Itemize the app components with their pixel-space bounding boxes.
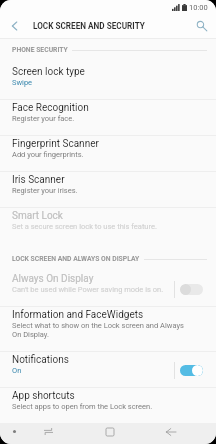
staticText: Swipe xyxy=(12,78,216,87)
button[interactable]: App shortcuts xyxy=(0,388,216,424)
button[interactable]: Recent apps xyxy=(38,421,59,442)
button[interactable]: Search xyxy=(187,13,216,38)
staticText: Face Recognition xyxy=(12,102,89,114)
staticText: Notifications xyxy=(12,354,69,366)
staticText: Set a secure screen lock to use this fea… xyxy=(12,222,216,231)
staticText: App shortcuts xyxy=(12,390,75,402)
button[interactable]: Face Recognition xyxy=(0,100,216,136)
button[interactable]: Information and FaceWidgets xyxy=(0,307,216,352)
button[interactable]: Notifications xyxy=(0,352,216,388)
staticText: LOCK SCREEN AND ALWAYS ON DISPLAY xyxy=(12,255,140,263)
staticText: Register your irises. xyxy=(12,186,216,195)
button[interactable]: Fingerprint Scanner xyxy=(0,136,216,172)
staticText: On xyxy=(12,366,174,375)
staticText: 10:00 xyxy=(189,3,208,12)
staticText: Always On Display xyxy=(12,273,94,285)
button[interactable]: Smart Lock xyxy=(0,208,216,244)
staticText: Register your face. xyxy=(12,114,216,123)
button[interactable]: Always On Display xyxy=(174,271,216,307)
staticText: Add your fingerprints. xyxy=(12,150,216,159)
button[interactable]: Back xyxy=(160,421,181,442)
button[interactable]: Home xyxy=(99,421,120,442)
staticText: Fingerprint Scanner xyxy=(12,138,99,150)
button[interactable]: Hide navigation bar xyxy=(6,423,23,440)
staticText: Screen lock type xyxy=(12,66,85,78)
staticText: Smart Lock xyxy=(12,210,63,222)
staticText: PHONE SECURITY xyxy=(12,46,68,54)
button[interactable]: Navigate up xyxy=(0,13,29,38)
staticText: Select what to show on the Lock screen a… xyxy=(12,321,192,339)
button[interactable]: Notifications xyxy=(174,352,216,388)
button[interactable]: Iris Scanner xyxy=(0,172,216,208)
button[interactable]: Always On Display xyxy=(0,271,216,307)
staticText: Select apps to open from the Lock screen… xyxy=(12,402,216,411)
staticText: Iris Scanner xyxy=(12,174,65,186)
staticText: Information and FaceWidgets xyxy=(12,309,144,321)
button[interactable]: Screen lock type xyxy=(0,64,216,100)
staticText: Can't be used while Power saving mode is… xyxy=(12,285,174,294)
staticText: LOCK SCREEN AND SECURITY xyxy=(33,21,145,31)
